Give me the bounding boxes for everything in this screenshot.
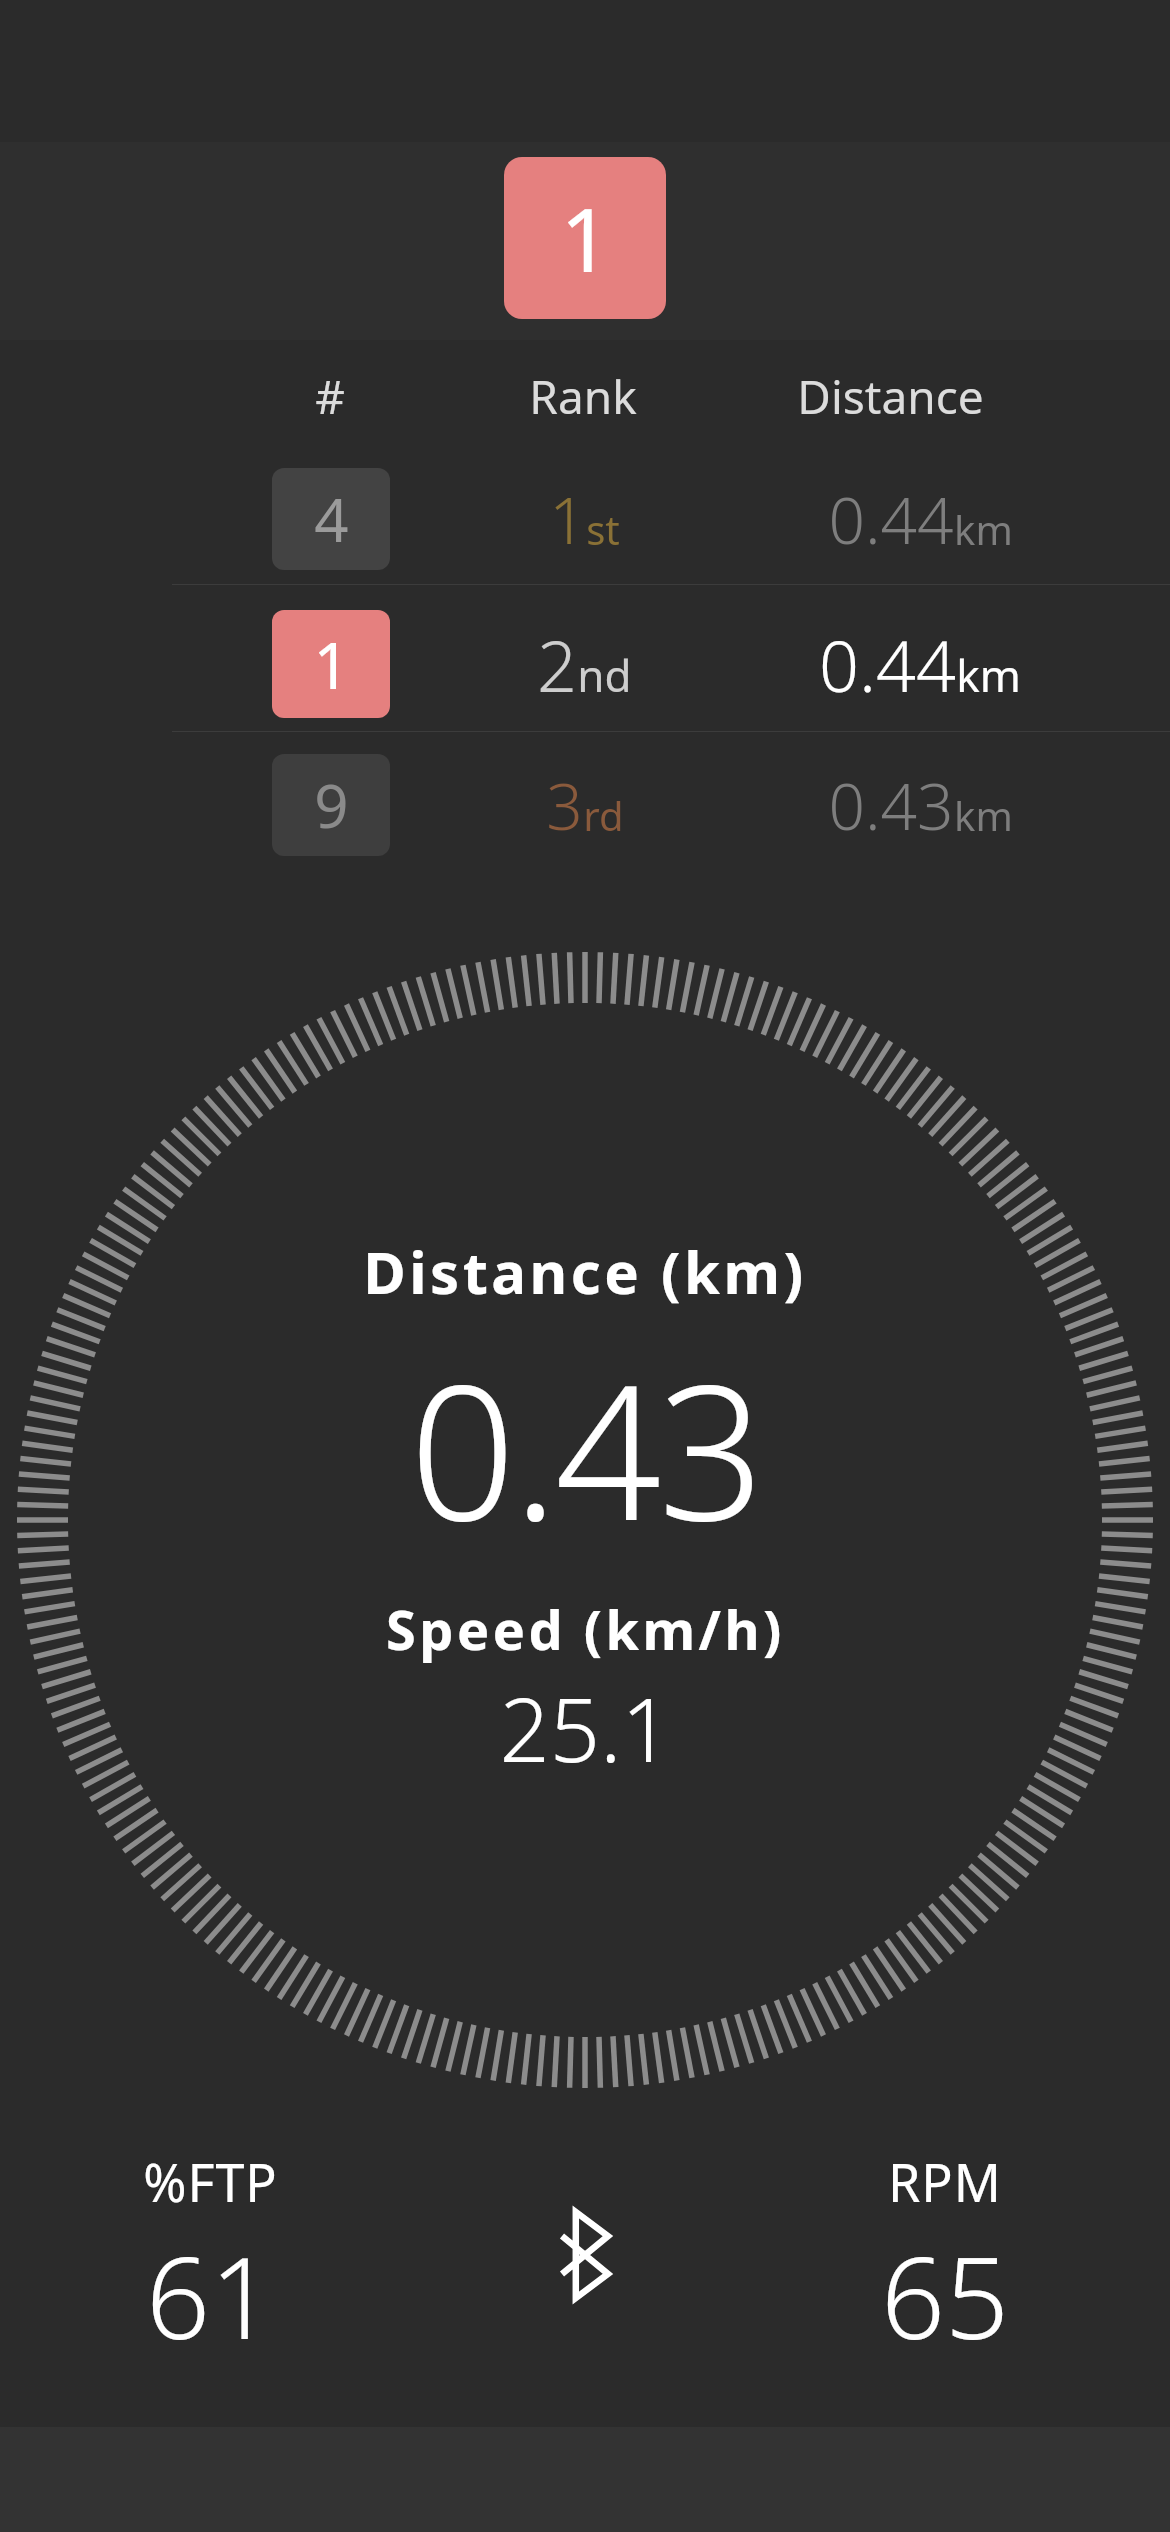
staticText: 0.44: [828, 476, 954, 563]
staticText: 9: [314, 764, 349, 846]
button[interactable]: %FTP: [75, 2146, 345, 2372]
staticText: %FTP: [143, 2146, 278, 2217]
staticText: 1: [549, 476, 586, 563]
staticText: 2: [537, 617, 577, 712]
staticText: 65: [881, 2219, 1009, 2372]
staticText: Speed (km/h): [386, 1592, 785, 1666]
button[interactable]: 1: [172, 600, 1170, 728]
staticText: Rank: [529, 365, 637, 428]
button[interactable]: 9: [172, 744, 1170, 866]
button[interactable]: Bluetooth connected: [525, 2195, 645, 2315]
staticText: 1: [313, 621, 350, 708]
staticText: 61: [146, 2219, 274, 2372]
button[interactable]: 1: [504, 157, 666, 319]
staticText: 0.43: [828, 762, 954, 849]
staticText: rd: [583, 788, 624, 842]
staticText: 0.43: [409, 1321, 762, 1574]
staticText: Distance (km): [363, 1232, 807, 1311]
button[interactable]: 4: [172, 458, 1170, 580]
staticText: 25.1: [499, 1668, 672, 1788]
staticText: #: [315, 365, 345, 428]
staticText: 0.44: [819, 617, 956, 712]
staticText: 3: [546, 762, 583, 849]
staticText: RPM: [888, 2146, 1002, 2217]
staticText: nd: [577, 645, 632, 705]
button[interactable]: RPM: [810, 2146, 1080, 2372]
staticText: km: [954, 502, 1013, 556]
staticText: Distance: [797, 365, 984, 428]
staticText: st: [586, 502, 620, 556]
staticText: 1: [560, 178, 611, 298]
staticText: km: [956, 645, 1021, 705]
staticText: km: [954, 788, 1013, 842]
staticText: 4: [314, 478, 349, 560]
